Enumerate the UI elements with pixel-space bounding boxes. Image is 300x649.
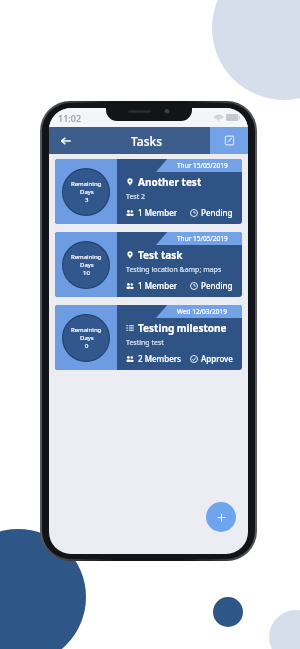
staticText: Testing location &amp; maps: [126, 265, 222, 275]
staticText: Thur 15/05/2019: [177, 234, 228, 243]
staticText: Approve: [201, 353, 233, 364]
staticText: 2 Members: [138, 353, 181, 364]
staticText: Remaining: [71, 326, 102, 334]
staticText: Days: [80, 261, 94, 269]
staticText: Days: [80, 188, 94, 196]
staticText: Thur 15/05/2019: [177, 161, 228, 170]
staticText: Test 2: [126, 192, 146, 202]
staticText: Remaining: [71, 253, 102, 261]
button[interactable]: Edit: [210, 127, 248, 154]
staticText: 10: [83, 269, 90, 277]
staticText: 1 Member: [138, 207, 178, 218]
staticText: Tasks: [131, 133, 163, 149]
staticText: 0: [85, 342, 89, 350]
staticText: Pending: [201, 207, 233, 218]
button[interactable]: Add task: [206, 502, 236, 532]
button[interactable]: Remaining: [55, 305, 242, 370]
staticText: Remaining: [71, 180, 102, 188]
staticText: Testing milestone: [138, 321, 227, 335]
button[interactable]: Back: [49, 127, 83, 154]
staticText: Another test: [138, 175, 202, 189]
staticText: Test task: [138, 248, 183, 262]
staticText: Testing test: [126, 338, 164, 348]
staticText: Wed 12/03/2019: [177, 307, 227, 316]
button[interactable]: Remaining: [55, 232, 242, 297]
button[interactable]: Remaining: [55, 159, 242, 224]
staticText: 11:02: [58, 112, 82, 124]
staticText: 1 Member: [138, 280, 178, 291]
staticText: Days: [80, 334, 94, 342]
staticText: 3: [85, 196, 89, 204]
staticText: Pending: [201, 280, 233, 291]
